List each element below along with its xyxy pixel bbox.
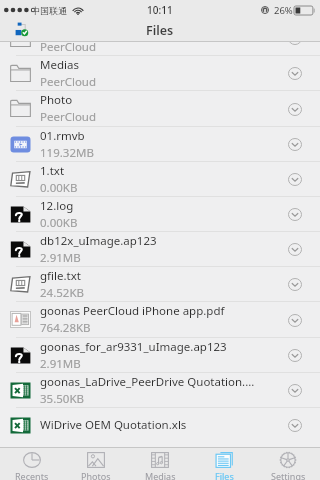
button[interactable]: goonas_LaDrive_PeerDrive Quotation.... xyxy=(0,372,320,407)
button[interactable]: db12x_uImage.ap123 xyxy=(0,231,320,266)
button[interactable]: Medias xyxy=(128,447,192,480)
staticText: 2.91MB xyxy=(40,356,81,372)
button[interactable]: goonas PeerCloud iPhone app.pdf xyxy=(0,301,320,337)
staticText: 26% xyxy=(274,4,293,17)
button[interactable]: log xyxy=(0,42,320,55)
staticText: 764.28KB xyxy=(40,320,91,336)
button[interactable]: Expand xyxy=(278,42,311,54)
staticText: 2.91MB xyxy=(40,250,81,266)
staticText: 35.50KB xyxy=(40,391,84,407)
button[interactable]: Expand xyxy=(278,233,311,265)
button[interactable]: 1.txt xyxy=(0,161,320,196)
staticText: Photo xyxy=(40,92,73,108)
staticText: gfile.txt xyxy=(40,268,81,284)
button[interactable]: App xyxy=(14,21,30,37)
staticText: 01.rmvb xyxy=(40,128,85,144)
staticText: 0.00KB xyxy=(40,215,78,231)
button[interactable]: gfile.txt xyxy=(0,266,320,301)
button[interactable]: Expand xyxy=(278,128,311,160)
button[interactable]: Expand xyxy=(278,163,311,195)
button[interactable]: Files xyxy=(192,447,256,480)
button[interactable]: 12.log xyxy=(0,196,320,231)
button[interactable]: WiDrive OEM Quotation.xls xyxy=(0,407,320,442)
staticText: WiDrive OEM Quotation.xls xyxy=(40,417,187,433)
staticText: Settings xyxy=(271,470,306,480)
button[interactable]: Settings xyxy=(256,447,320,480)
staticText: PeerCloud xyxy=(40,74,97,90)
button[interactable]: Expand xyxy=(278,93,311,125)
staticText: 10:11 xyxy=(147,3,173,17)
button[interactable]: Recents xyxy=(0,447,64,480)
staticText: goonas_for_ar9331_uImage.ap123 xyxy=(40,339,227,355)
button[interactable]: goonas_for_ar9331_uImage.ap123 xyxy=(0,337,320,372)
staticText: Medias xyxy=(145,470,176,480)
button[interactable]: Expand xyxy=(278,304,311,336)
staticText: Files xyxy=(146,22,174,39)
button[interactable]: Photos xyxy=(64,447,128,480)
staticText: PeerCloud xyxy=(40,42,97,55)
staticText: 119.32MB xyxy=(40,145,94,161)
staticText: 24.52KB xyxy=(40,285,84,301)
staticText: goonas PeerCloud iPhone app.pdf xyxy=(40,303,225,319)
button[interactable]: Photo xyxy=(0,90,320,126)
staticText: Photos xyxy=(81,470,111,480)
staticText: 1.txt xyxy=(40,163,65,179)
button[interactable]: 01.rmvb xyxy=(0,126,320,161)
button[interactable]: Expand xyxy=(278,198,311,230)
staticText: Recents xyxy=(15,470,49,480)
button[interactable]: Expand xyxy=(278,268,311,300)
staticText: PeerCloud xyxy=(40,109,97,125)
button[interactable]: Expand xyxy=(278,339,311,371)
staticText: 12.log xyxy=(40,198,74,214)
staticText: goonas_LaDrive_PeerDrive Quotation.... xyxy=(40,374,255,390)
staticText: 中国联通 xyxy=(31,5,67,16)
staticText: 0.00KB xyxy=(40,180,78,196)
button[interactable]: Medias xyxy=(0,55,320,90)
button[interactable]: Expand xyxy=(278,374,311,406)
staticText: Medias xyxy=(40,57,79,73)
staticText: Files xyxy=(215,470,234,480)
button[interactable]: Expand xyxy=(278,57,311,89)
staticText: db12x_uImage.ap123 xyxy=(40,233,157,249)
button[interactable]: Expand xyxy=(278,409,311,441)
